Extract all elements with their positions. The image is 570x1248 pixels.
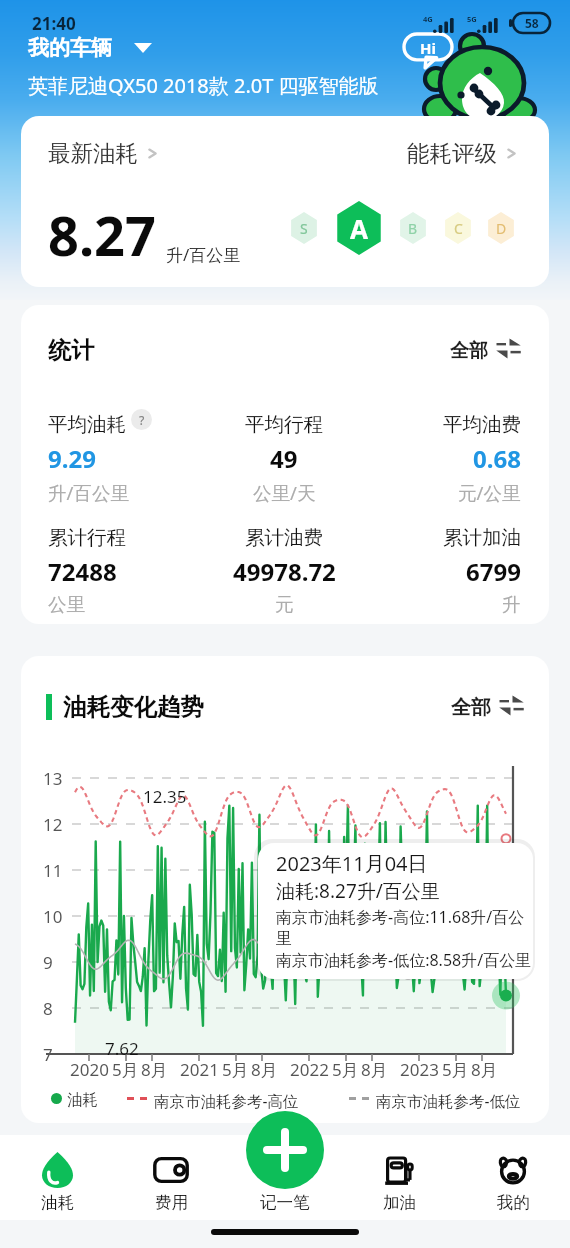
staticText: 2023年11月04日: [276, 850, 428, 877]
staticText: Hi: [420, 38, 436, 58]
staticText: 升: [502, 593, 521, 616]
staticText: 元: [275, 593, 294, 616]
staticText: 2021: [180, 1058, 219, 1081]
staticText: 8: [43, 997, 53, 1020]
staticText: 5月: [442, 1058, 469, 1081]
staticText: 油耗:8.27升/百公里: [276, 878, 440, 904]
staticText: 11: [43, 859, 63, 882]
staticText: 油耗: [67, 1090, 98, 1110]
staticText: 9: [43, 951, 53, 974]
staticText: 10: [43, 905, 63, 928]
staticText: 我的车辆: [28, 35, 112, 61]
staticText: 7: [43, 1043, 53, 1066]
button[interactable]: 费用: [114, 1135, 228, 1220]
staticText: 5月: [222, 1058, 249, 1081]
staticText: 7.62: [105, 1037, 139, 1060]
staticText: 49: [270, 442, 298, 475]
staticText: 公里/天: [253, 480, 316, 505]
staticText: 12.35: [143, 785, 187, 808]
staticText: 5月: [332, 1058, 359, 1081]
staticText: 升/百公里: [166, 243, 241, 266]
staticText: 9.29: [48, 442, 96, 475]
staticText: 累计油费: [245, 525, 323, 550]
staticText: B: [408, 219, 418, 238]
staticText: 英菲尼迪QX50 2018款 2.0T 四驱智能版: [28, 72, 379, 99]
staticText: 费用: [155, 1192, 188, 1213]
button[interactable]: 油耗: [0, 1135, 114, 1220]
staticText: 5月: [112, 1058, 139, 1081]
staticText: 升/百公里: [48, 480, 129, 505]
staticText: 我的: [497, 1192, 530, 1213]
staticText: 油耗变化趋势: [63, 692, 204, 722]
button[interactable]: 能耗评级: [407, 139, 516, 167]
staticText: 13: [43, 767, 63, 790]
staticText: 全部: [450, 339, 488, 363]
staticText: 4G: [423, 14, 433, 24]
staticText: 元/公里: [458, 480, 521, 505]
staticText: ?: [139, 412, 145, 428]
staticText: 8月: [361, 1058, 388, 1081]
staticText: 49978.72: [233, 555, 336, 588]
button[interactable]: 全部: [450, 338, 521, 363]
staticText: 累计行程: [48, 525, 126, 550]
staticText: 平均行程: [245, 412, 323, 437]
staticText: 南京市油耗参考-高位: [154, 1090, 299, 1111]
staticText: 2020: [70, 1058, 109, 1081]
staticText: 加油: [383, 1192, 416, 1213]
staticText: 南京市油耗参考-低位: [376, 1090, 521, 1111]
button[interactable]: 我的车辆: [28, 35, 152, 61]
staticText: 21:40: [32, 12, 76, 35]
staticText: 平均油费: [443, 412, 521, 437]
staticText: 8月: [251, 1058, 278, 1081]
staticText: 2022: [290, 1058, 329, 1081]
staticText: 58: [525, 15, 539, 31]
button[interactable]: 记一笔: [228, 1135, 342, 1220]
staticText: 12: [43, 813, 63, 836]
staticText: 平均油耗: [48, 412, 126, 437]
staticText: 6799: [466, 555, 521, 588]
staticText: 累计加油: [443, 525, 521, 550]
button[interactable]: 记一笔: [246, 1111, 324, 1189]
staticText: 记一笔: [260, 1192, 310, 1213]
staticText: 能耗评级: [407, 139, 497, 167]
button[interactable]: 我的: [456, 1135, 570, 1220]
staticText: 油耗: [41, 1192, 74, 1213]
staticText: S: [300, 219, 308, 238]
staticText: C: [454, 219, 463, 238]
staticText: D: [496, 219, 507, 238]
button[interactable]: 最新油耗: [48, 139, 157, 167]
staticText: 0.68: [473, 442, 521, 475]
staticText: 最新油耗: [48, 139, 138, 167]
staticText: 8月: [141, 1058, 168, 1081]
staticText: 8月: [471, 1058, 498, 1081]
staticText: 公里: [48, 593, 85, 616]
staticText: 统计: [48, 336, 94, 365]
button[interactable]: 全部: [451, 695, 524, 720]
staticText: 南京市油耗参考-低位:8.58升/百公里: [276, 949, 532, 971]
staticText: 72488: [48, 555, 117, 588]
staticText: 2023: [400, 1058, 439, 1081]
staticText: 8.27: [48, 198, 156, 272]
staticText: A: [350, 211, 368, 246]
staticText: 南京市油耗参考-高位:11.68升/百公 里: [276, 906, 525, 948]
staticText: 全部: [451, 695, 491, 720]
staticText: 5G: [467, 14, 477, 24]
button[interactable]: 加油: [342, 1135, 456, 1220]
